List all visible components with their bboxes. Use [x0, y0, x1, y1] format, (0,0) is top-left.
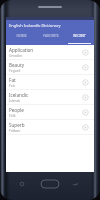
staticText: People — [9, 107, 24, 113]
button[interactable]: Application — [6, 45, 94, 60]
staticText: FAVORITE — [43, 33, 59, 38]
staticText: Icelandic — [9, 92, 29, 98]
button[interactable]: Play pronunciation — [82, 94, 89, 101]
button[interactable]: Play pronunciation — [82, 124, 89, 131]
button[interactable]: RECENT — [65, 31, 94, 45]
staticText: Fólk — [9, 113, 16, 118]
staticText: Superb — [9, 122, 25, 128]
button[interactable]: Superb — [6, 120, 94, 135]
button[interactable]: Play pronunciation — [82, 79, 89, 86]
button[interactable]: Recents — [19, 181, 25, 187]
staticText: Fegurð — [9, 68, 21, 73]
button[interactable]: Beauty — [6, 60, 94, 75]
staticText: Feit — [9, 83, 15, 88]
button[interactable]: FAVORITE — [36, 31, 65, 45]
staticText: Íslensk — [9, 98, 21, 103]
button[interactable]: Icelandic — [6, 90, 94, 105]
staticText: Umsókn — [9, 53, 23, 58]
button[interactable]: Play pronunciation — [82, 49, 89, 56]
button[interactable]: Home — [41, 180, 59, 188]
button[interactable]: Back — [72, 181, 78, 187]
button[interactable]: Play pronunciation — [82, 64, 89, 71]
staticText: English Icelandic Dictionary — [9, 23, 61, 28]
button[interactable]: People — [6, 105, 94, 120]
staticText: Fat — [9, 77, 16, 83]
staticText: RECENT — [73, 33, 86, 38]
staticText: HOME — [16, 33, 27, 38]
staticText: Frábær — [9, 128, 21, 133]
button[interactable]: Play pronunciation — [82, 109, 89, 116]
button[interactable]: HOME — [6, 31, 36, 45]
staticText: Beauty — [9, 62, 24, 68]
button[interactable]: Fat — [6, 75, 94, 90]
staticText: Application — [9, 47, 34, 53]
